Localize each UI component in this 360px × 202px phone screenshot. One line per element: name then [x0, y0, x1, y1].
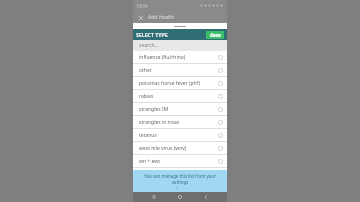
- staticText: rabies: [139, 93, 154, 100]
- staticText: 14:34: [136, 3, 148, 9]
- button[interactable]: influenza (flu/rhino): [133, 51, 227, 63]
- staticText: west nile virus (wnv): [139, 145, 187, 152]
- staticText: SELECT TYPE: [136, 31, 168, 38]
- button[interactable]: strangles IM: [133, 103, 227, 115]
- button[interactable]: Close: [133, 11, 227, 23]
- button[interactable]: search...: [133, 40, 227, 51]
- button[interactable]: rabies: [133, 90, 227, 102]
- staticText: done: [210, 32, 221, 38]
- staticText: search...: [139, 42, 159, 49]
- staticText: wn + ewt: [139, 158, 160, 165]
- button[interactable]: tetanus: [133, 129, 227, 141]
- staticText: online at:: [138, 187, 222, 189]
- button[interactable]: wn + ewt: [133, 155, 227, 167]
- staticText: Add Health: [148, 14, 175, 21]
- staticText: potomac horse fever (phf): [139, 80, 201, 87]
- staticText: other: [139, 67, 152, 74]
- button[interactable]: other: [133, 64, 227, 76]
- button[interactable]: potomac horse fever (phf): [133, 77, 227, 89]
- staticText: You can manage this list from your setti…: [138, 173, 222, 185]
- button[interactable]: Recents: [201, 192, 211, 202]
- button[interactable]: strangles in nose: [133, 116, 227, 128]
- staticText: influenza (flu/rhino): [139, 54, 186, 61]
- staticText: strangles in nose: [139, 119, 179, 126]
- button[interactable]: Home: [175, 192, 185, 202]
- button[interactable]: Close: [137, 14, 144, 21]
- button[interactable]: done: [206, 31, 224, 39]
- button[interactable]: You can manage this list from your setti…: [133, 170, 227, 192]
- button[interactable]: west nile virus (wnv): [133, 142, 227, 154]
- staticText: tetanus: [139, 132, 157, 139]
- button[interactable]: Back: [149, 192, 159, 202]
- staticText: strangles IM: [139, 106, 169, 113]
